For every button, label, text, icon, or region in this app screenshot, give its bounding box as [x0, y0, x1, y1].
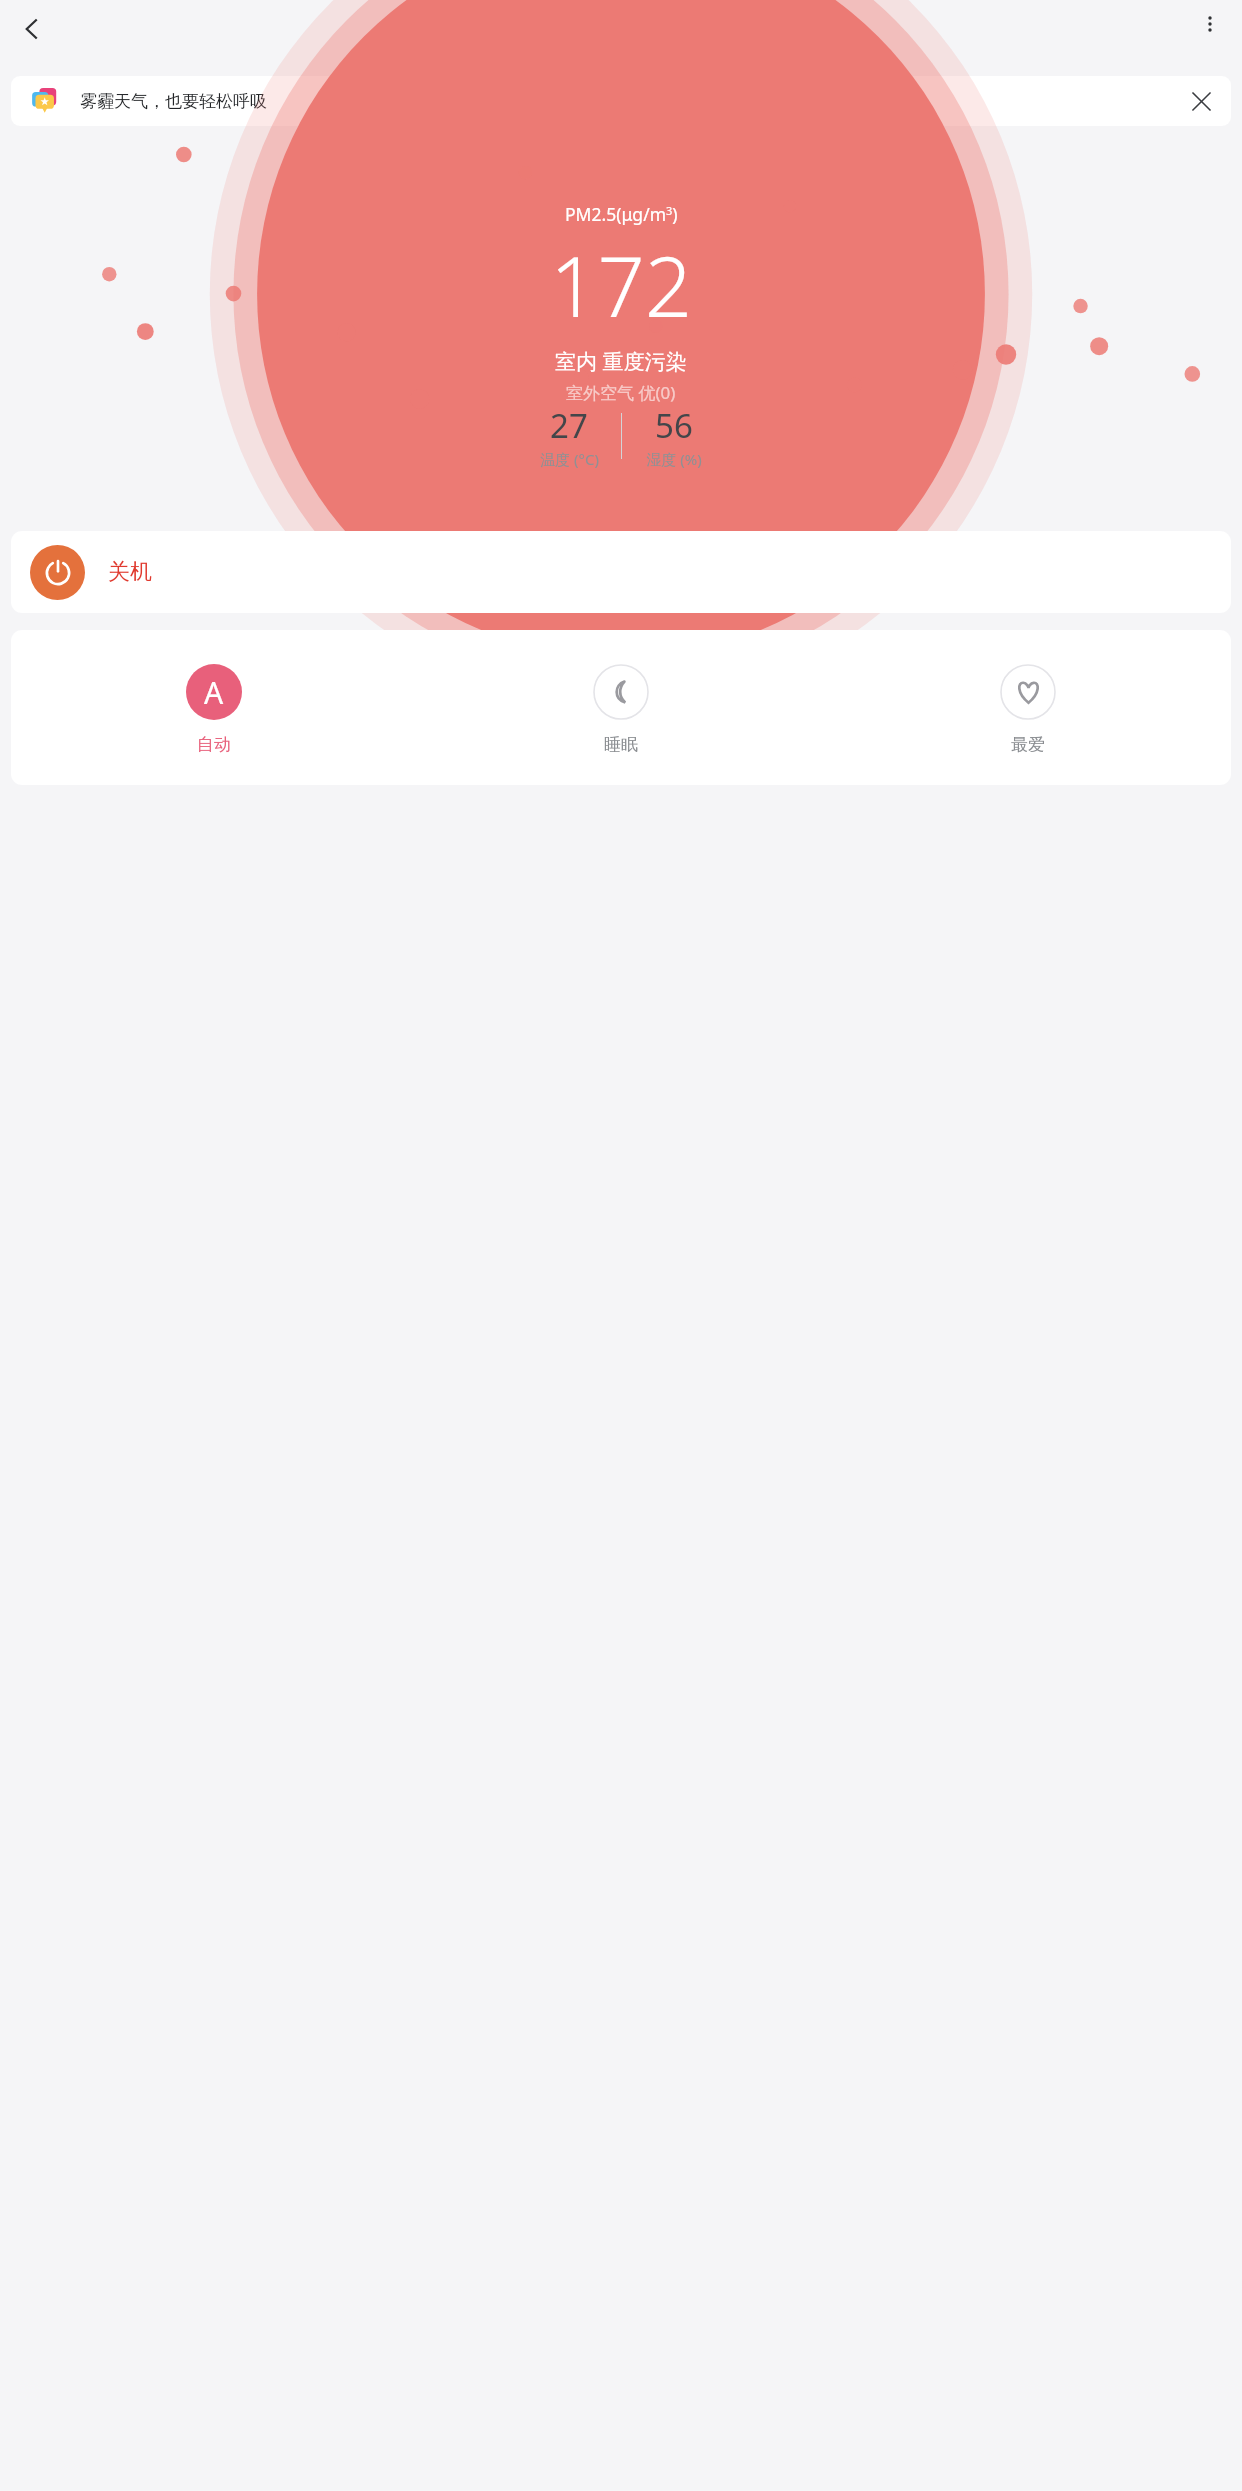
- button[interactable]: 雾霾天气，也要轻松呼吸: [11, 76, 1231, 126]
- button[interactable]: Close: [1179, 79, 1223, 123]
- staticText: 室外空气 优(0): [566, 381, 676, 403]
- staticText: 湿度 (%): [646, 449, 702, 469]
- button[interactable]: 关机: [11, 531, 1231, 613]
- staticText: 关机: [108, 558, 152, 586]
- staticText: 雾霾天气，也要轻松呼吸: [80, 91, 267, 112]
- button[interactable]: Back: [8, 5, 56, 53]
- button[interactable]: More options: [1186, 0, 1234, 48]
- staticText: 温度 (°C): [540, 449, 599, 469]
- staticText: 172: [550, 228, 693, 341]
- staticText: 27: [550, 403, 588, 448]
- staticText: A: [204, 672, 224, 713]
- button[interactable]: A: [11, 664, 417, 755]
- button[interactable]: 最爱: [824, 664, 1231, 755]
- staticText: 56: [655, 403, 693, 448]
- staticText: 睡眠: [604, 734, 638, 755]
- button[interactable]: 睡眠: [417, 664, 824, 755]
- staticText: 自动: [197, 734, 231, 755]
- staticText: 室内 重度污染: [555, 347, 687, 376]
- staticText: 最爱: [1011, 734, 1045, 755]
- staticText: PM2.5(μg/m3): [565, 202, 678, 226]
